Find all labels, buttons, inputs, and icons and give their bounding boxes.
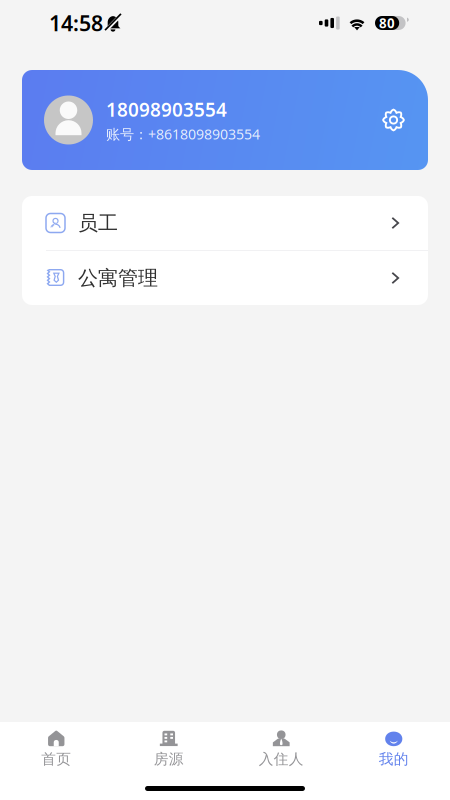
button[interactable]: 公寓管理 <box>22 251 428 305</box>
staticText: 房源 <box>154 750 184 768</box>
button[interactable]: 房源 <box>112 725 225 773</box>
staticText: 我的 <box>379 750 409 768</box>
staticText: 入住人 <box>259 750 304 768</box>
staticText: 账号：+8618098903554 <box>106 124 260 143</box>
button[interactable]: 我的 <box>337 725 450 773</box>
staticText: 员工 <box>78 211 118 235</box>
button[interactable]: 首页 <box>0 725 112 773</box>
staticText: 公寓管理 <box>78 266 158 290</box>
button[interactable]: 员工 <box>22 196 428 250</box>
staticText: 80 <box>379 14 395 32</box>
staticText: 首页 <box>41 750 71 768</box>
staticText: 14:58 <box>49 9 103 37</box>
staticText: 18098903554 <box>106 96 227 122</box>
button[interactable]: Settings <box>380 106 407 133</box>
button[interactable]: 入住人 <box>225 725 337 773</box>
